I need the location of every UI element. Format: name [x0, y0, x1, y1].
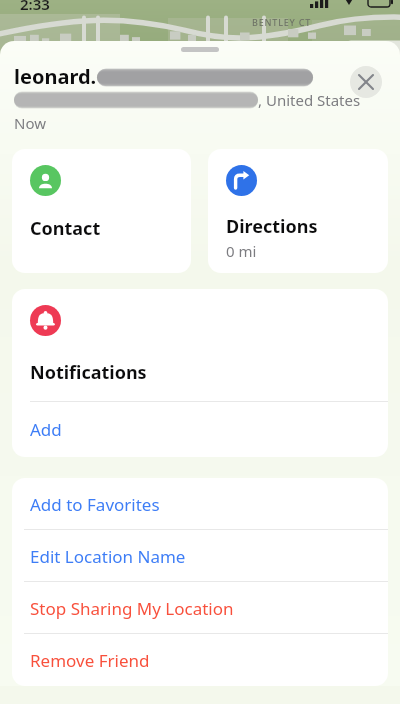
staticText: Notifications — [30, 360, 147, 385]
staticText: Add to Favorites — [30, 493, 160, 516]
button[interactable]: Edit Location Name — [12, 530, 388, 582]
button[interactable]: Add — [12, 402, 388, 457]
staticText: Add — [30, 418, 62, 441]
staticText: 2:33 — [20, 0, 50, 14]
staticText: Contact — [30, 216, 101, 241]
staticText: Remove Friend — [30, 649, 150, 672]
button[interactable]: Contact — [12, 149, 191, 273]
staticText: Stop Sharing My Location — [30, 597, 234, 620]
staticText: BENTLEY CT — [252, 16, 312, 28]
staticText: Now — [14, 113, 46, 133]
button[interactable]: Add to Favorites — [12, 478, 388, 530]
staticText: Edit Location Name — [30, 545, 186, 568]
button[interactable]: Directions — [208, 149, 388, 273]
staticText: , United States — [258, 90, 361, 110]
staticText: Directions — [226, 214, 318, 239]
staticText: leonard. — [14, 63, 97, 90]
button[interactable]: Remove Friend — [12, 634, 388, 686]
staticText: 0 mi — [226, 241, 257, 261]
button[interactable]: Stop Sharing My Location — [12, 582, 388, 634]
button[interactable]: Close — [350, 66, 382, 98]
